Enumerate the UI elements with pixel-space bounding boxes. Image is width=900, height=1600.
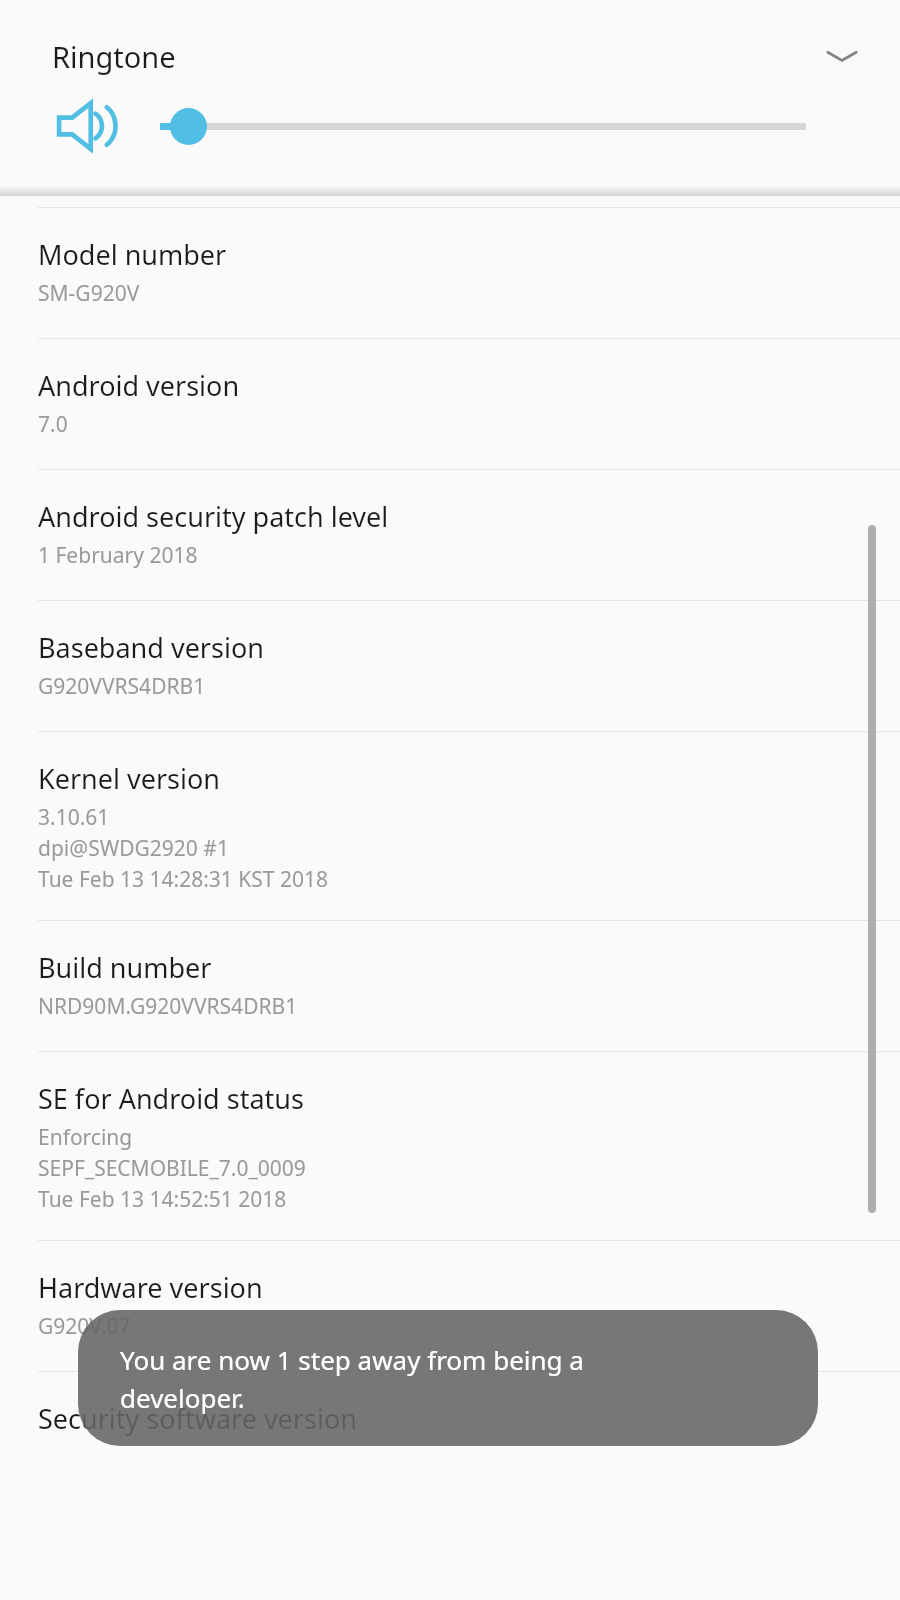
staticText: Build number (38, 949, 212, 986)
button[interactable]: Security software version (0, 1372, 900, 1502)
staticText: Ringtone (52, 37, 176, 76)
staticText: Enforcing (38, 1123, 133, 1152)
button[interactable]: Collapse (818, 15, 866, 97)
staticText: Baseband version (38, 629, 264, 666)
staticText: SE for Android status (38, 1080, 304, 1117)
staticText: Android security patch level (38, 498, 389, 535)
staticText: Model number (38, 236, 227, 273)
staticText: Tue Feb 13 14:52:51 2018 (38, 1185, 287, 1214)
staticText: You are now 1 step away from being a dev… (120, 1342, 584, 1415)
staticText: Android version (38, 367, 240, 404)
button[interactable]: Hardware version (0, 1241, 900, 1371)
staticText: 1 February 2018 (38, 541, 198, 570)
staticText: Kernel version (38, 760, 221, 797)
button[interactable]: You are now 1 step away from being a dev… (78, 1310, 818, 1446)
button[interactable]: Kernel version (0, 732, 900, 920)
staticText: 7.0 (38, 410, 68, 439)
button[interactable]: Baseband version (0, 601, 900, 731)
staticText: Security software version (38, 1400, 357, 1437)
button[interactable]: SE for Android status (0, 1052, 900, 1240)
button[interactable]: Android security patch level (0, 470, 900, 600)
button[interactable]: Model number (0, 208, 900, 338)
button[interactable]: Build number (0, 921, 900, 1051)
staticText: 3.10.61 (38, 803, 110, 832)
staticText: Tue Feb 13 14:28:31 KST 2018 (38, 865, 329, 894)
staticText: NRD90M.G920VVRS4DRB1 (38, 992, 298, 1021)
button[interactable]: Ringtone volume slider (160, 96, 780, 156)
staticText: Hardware version (38, 1269, 263, 1306)
button[interactable]: Android version (0, 339, 900, 469)
staticText: dpi@SWDG2920 #1 (38, 834, 229, 863)
other: Ringtone volume (56, 100, 118, 152)
staticText: SM-G920V (38, 279, 140, 308)
staticText: G920V.07 (38, 1312, 131, 1341)
staticText: G920VVRS4DRB1 (38, 672, 206, 701)
staticText: SEPF_SECMOBILE_7.0_0009 (38, 1154, 306, 1183)
